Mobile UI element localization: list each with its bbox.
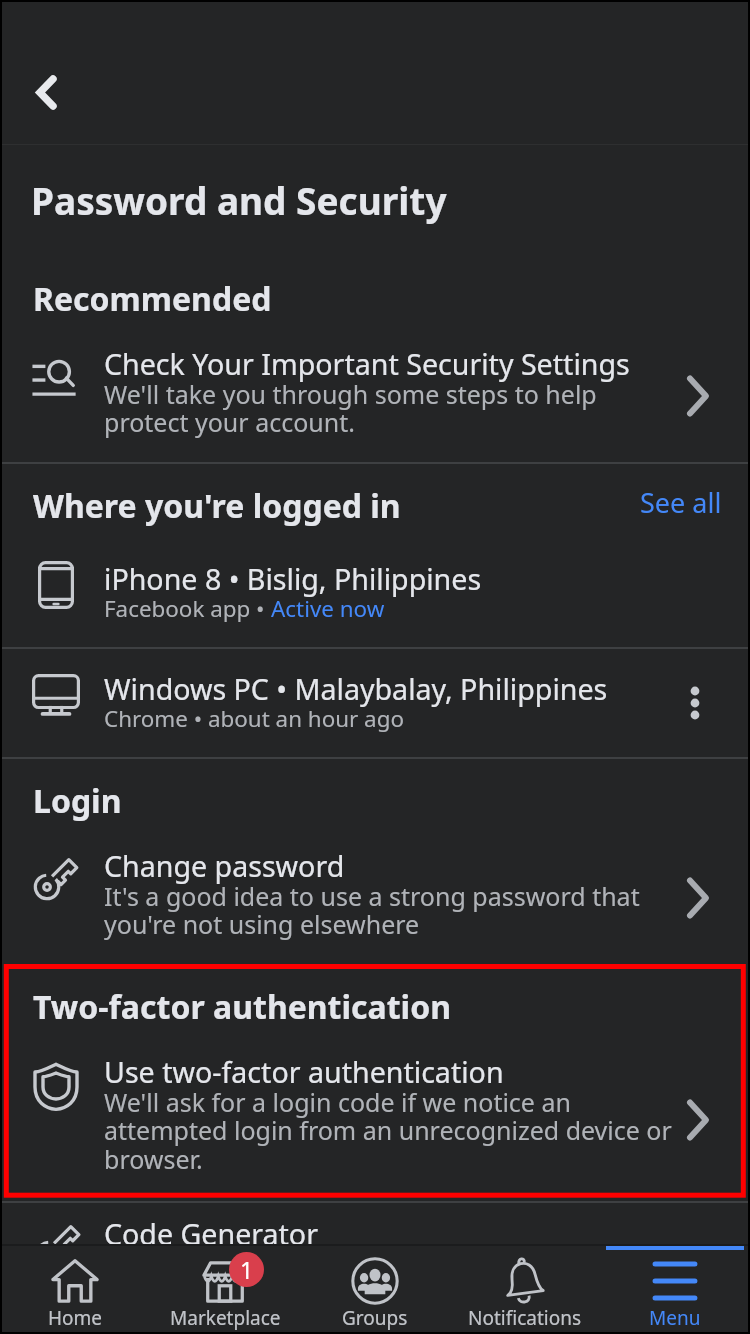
staticText: We'll ask for a login code if we notice … [104, 1085, 674, 1177]
staticText: It's a good idea to use a strong passwor… [104, 879, 664, 942]
staticText: Marketplace [170, 1305, 281, 1331]
staticText: Recommended [33, 277, 272, 321]
button[interactable]: Home [0, 1246, 150, 1334]
button[interactable]: iPhone 8 • Bislig, Philippines [0, 540, 750, 646]
staticText: Facebook app • [104, 593, 271, 624]
staticText: See all [640, 484, 722, 521]
staticText: Menu [649, 1305, 701, 1331]
button[interactable]: Back [16, 62, 77, 123]
staticText: Two-factor authentication [33, 985, 451, 1029]
staticText: Login [33, 779, 122, 823]
button[interactable]: Groups [300, 1246, 450, 1334]
button[interactable]: Use two-factor authentication [0, 1044, 750, 1194]
staticText: Chrome • about an hour ago [104, 703, 404, 734]
staticText: Use two-factor authentication [104, 1052, 504, 1091]
staticText: Password and Security [31, 175, 447, 225]
staticText: Windows PC • Malaybalay, Philippines [104, 669, 608, 708]
button[interactable]: Code Generator [0, 1204, 750, 1246]
staticText: Check Your Important Security Settings [104, 344, 630, 383]
staticText: iPhone 8 • Bislig, Philippines [104, 559, 482, 598]
staticText: Change password [104, 846, 345, 885]
button[interactable]: See all [640, 484, 722, 521]
staticText: Active now [271, 593, 385, 624]
button[interactable]: Change password [0, 838, 750, 958]
staticText: We'll take you through some steps to hel… [104, 377, 664, 440]
staticText: 1 [240, 1254, 254, 1285]
staticText: Where you're logged in [33, 484, 401, 528]
staticText: Home [48, 1305, 103, 1331]
button[interactable]: More options [674, 682, 716, 724]
button[interactable]: Menu [600, 1246, 750, 1334]
button[interactable]: Windows PC • Malaybalay, Philippines [0, 650, 750, 756]
button[interactable]: Notifications [450, 1246, 600, 1334]
staticText: Groups [342, 1305, 408, 1331]
button[interactable]: Check Your Important Security Settings [0, 336, 750, 456]
staticText: Notifications [468, 1305, 582, 1331]
staticText: Code Generator [104, 1214, 318, 1246]
button[interactable]: 1 [150, 1246, 300, 1334]
